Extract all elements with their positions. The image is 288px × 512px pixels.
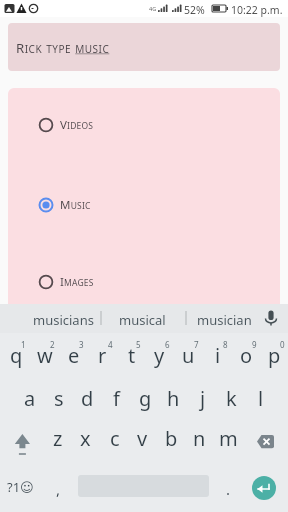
staticText: z (53, 425, 63, 452)
button[interactable]: ?1☺ (7, 478, 34, 496)
button[interactable]: v (128, 421, 157, 455)
staticText: 3 (79, 339, 84, 350)
button[interactable]: MUSIC (39, 195, 91, 215)
button[interactable]: s (44, 381, 73, 415)
staticText: p (268, 342, 281, 369)
button[interactable]: t (117, 338, 146, 372)
staticText: MUSIC (60, 197, 91, 213)
staticText: i (215, 342, 221, 369)
staticText: 6 (165, 339, 170, 350)
button[interactable]: p (260, 338, 288, 372)
staticText: n (193, 425, 206, 452)
staticText: a (24, 385, 36, 412)
staticText: 10:22 p.m. (231, 3, 283, 17)
button[interactable]: k (217, 381, 246, 415)
button[interactable]: l (246, 381, 275, 415)
staticText: y (154, 342, 165, 369)
button[interactable]: musicians (33, 311, 94, 329)
button[interactable]: w (30, 338, 59, 372)
staticText: l (258, 385, 264, 412)
button[interactable]: b (157, 421, 186, 455)
button[interactable]: VIDEOS (39, 115, 94, 135)
staticText: e (68, 342, 80, 369)
button[interactable]: c (100, 421, 129, 455)
staticText: VIDEOS (60, 117, 94, 133)
staticText: t (128, 342, 136, 369)
staticText: 4 (108, 339, 113, 350)
button[interactable]: . (226, 479, 231, 499)
staticText: c (110, 425, 120, 452)
staticText: j (200, 385, 206, 412)
staticText: v (137, 425, 148, 452)
staticText: g (139, 385, 152, 412)
staticText: 2 (50, 339, 55, 350)
staticText: 0 (280, 339, 285, 350)
button[interactable]: f (102, 381, 131, 415)
button[interactable]: q (2, 338, 31, 372)
button[interactable]: h (159, 381, 188, 415)
button[interactable]: e (59, 338, 88, 372)
staticText: w (37, 342, 53, 369)
staticText: RICK TYPE MUSIC (16, 38, 110, 57)
staticText: x (80, 425, 91, 452)
staticText: q (10, 342, 23, 369)
button[interactable]: a (15, 381, 44, 415)
button[interactable]: IMAGES (39, 272, 94, 292)
staticText: d (81, 385, 94, 412)
button[interactable]: n (185, 421, 214, 455)
staticText: IMAGES (60, 274, 94, 290)
staticText: 4G (149, 5, 157, 12)
button[interactable]: u (174, 338, 203, 372)
button[interactable]: g (131, 381, 160, 415)
staticText: k (226, 385, 237, 412)
button[interactable]: musical (119, 311, 166, 329)
button[interactable]: d (73, 381, 102, 415)
staticText: h (167, 385, 180, 412)
button[interactable]: o (232, 338, 261, 372)
button[interactable]: y (145, 338, 174, 372)
staticText: o (240, 342, 253, 369)
button[interactable] (252, 476, 276, 500)
staticText: f (113, 385, 120, 412)
staticText: b (165, 425, 178, 452)
button[interactable]: x (71, 421, 100, 455)
button[interactable] (0, 421, 288, 462)
button[interactable]: z (43, 421, 72, 455)
button[interactable]: m (214, 421, 243, 455)
staticText: 1 (21, 339, 26, 350)
staticText: u (182, 342, 195, 369)
button[interactable]: , (56, 479, 61, 499)
button[interactable]: RICK TYPE MUSIC (8, 23, 280, 71)
staticText: 9 (252, 339, 257, 350)
button[interactable]: r (88, 338, 117, 372)
button[interactable]: j (188, 381, 217, 415)
staticText: m (219, 425, 238, 452)
staticText: 8 (223, 339, 228, 350)
staticText: 52% (184, 3, 205, 17)
button[interactable]: musician (197, 311, 252, 329)
button[interactable]: i (203, 338, 232, 372)
staticText: 7 (194, 339, 199, 350)
staticText: r (98, 342, 107, 369)
staticText: 5 (136, 339, 141, 350)
staticText: s (54, 385, 64, 412)
